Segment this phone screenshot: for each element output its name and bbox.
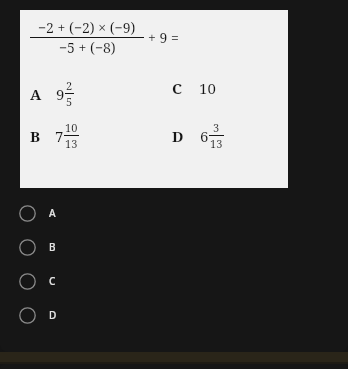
button[interactable]: B [0,230,348,264]
button[interactable]: A [0,196,348,230]
staticText: B [49,240,56,254]
staticText: A [30,84,42,104]
staticText: −2 + (−2) × (−9) [38,18,136,37]
staticText: A [49,206,56,220]
staticText: 7 [55,126,64,146]
staticText: 9 [56,84,65,104]
staticText: D [172,126,184,146]
staticText: D [49,308,57,322]
staticText: + 9 = [148,28,179,47]
button[interactable]: D [0,298,348,332]
staticText: 13 [210,136,223,151]
staticText: 13 [65,136,78,151]
staticText: 2 [66,78,73,93]
staticText: 6 [200,126,209,146]
staticText: 10 [65,120,78,135]
staticText: C [49,274,56,288]
staticText: 3 [213,120,220,135]
staticText: 5 [66,94,73,109]
staticText: −5 + (−8) [59,38,116,57]
staticText: C [172,78,183,98]
button[interactable]: C [0,264,348,298]
staticText: 10 [199,78,216,98]
staticText: B [30,126,41,146]
